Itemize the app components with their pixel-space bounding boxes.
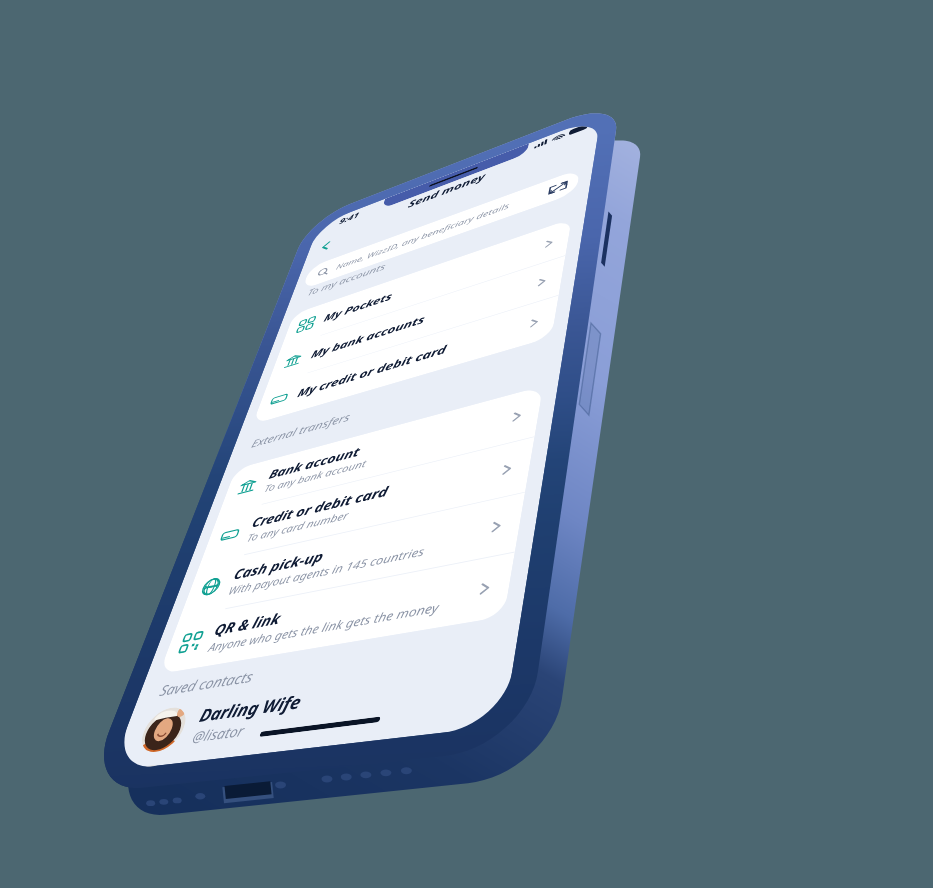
button[interactable]: Bank account [14, 427, 346, 490]
button[interactable]: My bank accounts [14, 241, 346, 301]
staticText: Credit or debit card [63, 503, 211, 525]
button[interactable]: Darling Wife [0, 715, 360, 772]
staticText: Saved contacts [24, 691, 123, 711]
staticText: @lisator [80, 746, 132, 765]
button[interactable]: My credit or debit card [14, 302, 346, 362]
button[interactable]: Father Brandt Zanni [0, 772, 360, 780]
staticText: With payout agents in 145 countries [63, 589, 263, 606]
button[interactable]: Cash pick-up [14, 555, 346, 618]
button[interactable]: Credit or debit card [14, 491, 346, 554]
button[interactable]: QR & link [14, 619, 346, 682]
staticText: Anyone who gets the link gets the money [63, 653, 288, 670]
staticText: Darling Wife [80, 723, 180, 746]
button[interactable]: My Pockets [14, 180, 346, 240]
